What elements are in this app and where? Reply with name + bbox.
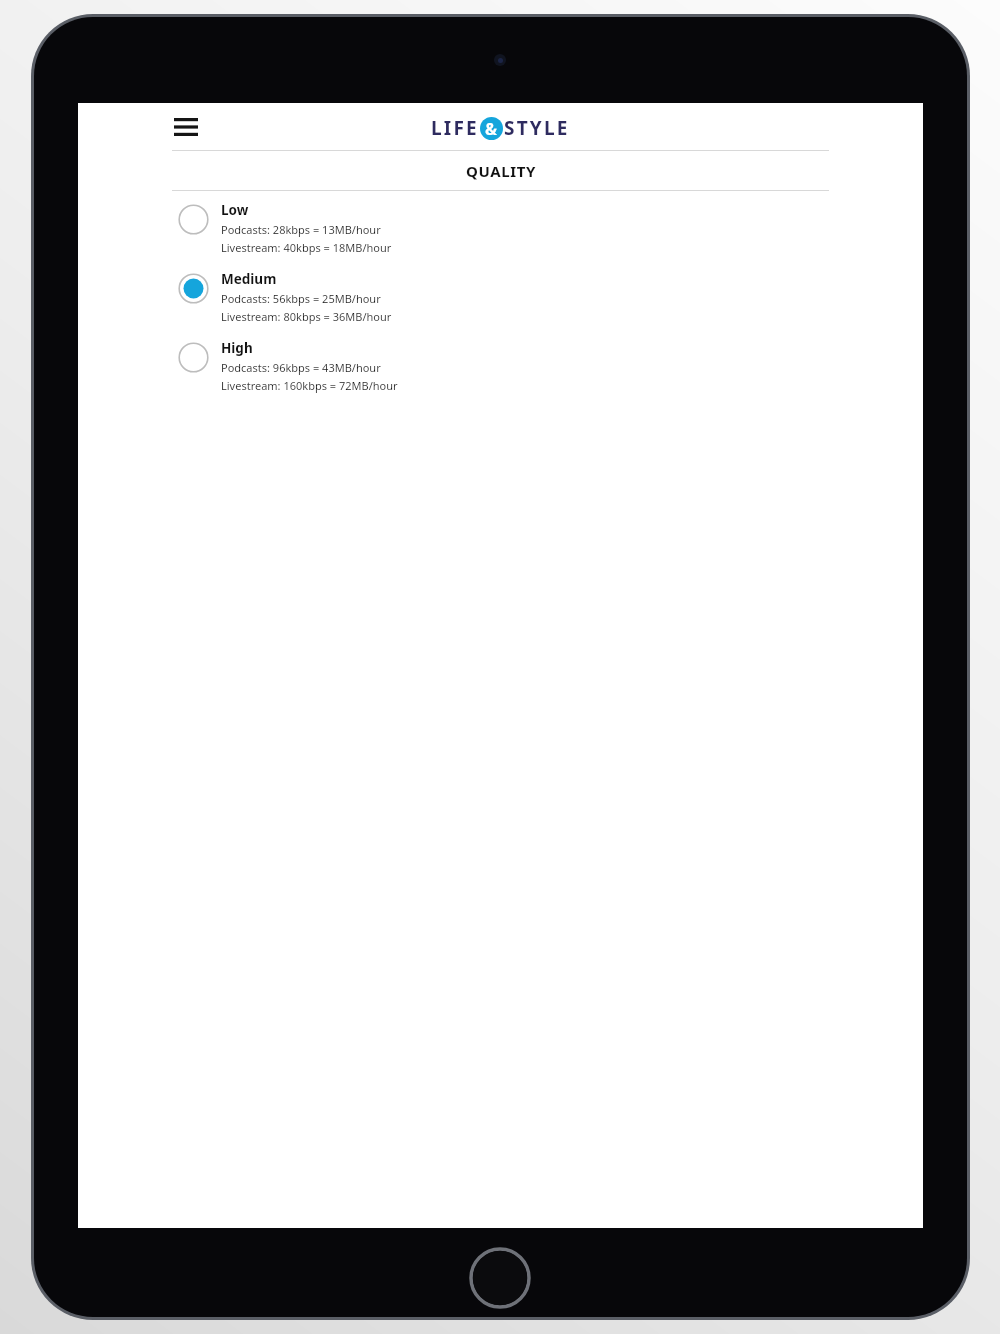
staticText: Livestream: 80kbps = 36MB/hour <box>221 309 392 324</box>
staticText: Podcasts: 56kbps = 25MB/hour <box>221 291 381 306</box>
staticText: Podcasts: 28kbps = 13MB/hour <box>221 222 381 237</box>
staticText: QUALITY <box>466 161 536 181</box>
staticText: & <box>485 118 498 140</box>
button[interactable]: Menu <box>166 107 206 147</box>
staticText: High <box>221 339 253 357</box>
other: Home <box>468 1246 532 1310</box>
staticText: LIFE <box>431 115 479 141</box>
button[interactable]: Medium <box>78 269 923 338</box>
staticText: Medium <box>221 270 277 288</box>
staticText: Livestream: 160kbps = 72MB/hour <box>221 378 398 393</box>
button[interactable]: LIFE <box>431 115 570 141</box>
button[interactable]: High <box>78 338 923 407</box>
button[interactable]: Low <box>78 200 923 269</box>
staticText: Livestream: 40kbps = 18MB/hour <box>221 240 392 255</box>
staticText: STYLE <box>504 115 570 141</box>
staticText: Low <box>221 201 249 219</box>
staticText: Podcasts: 96kbps = 43MB/hour <box>221 360 381 375</box>
